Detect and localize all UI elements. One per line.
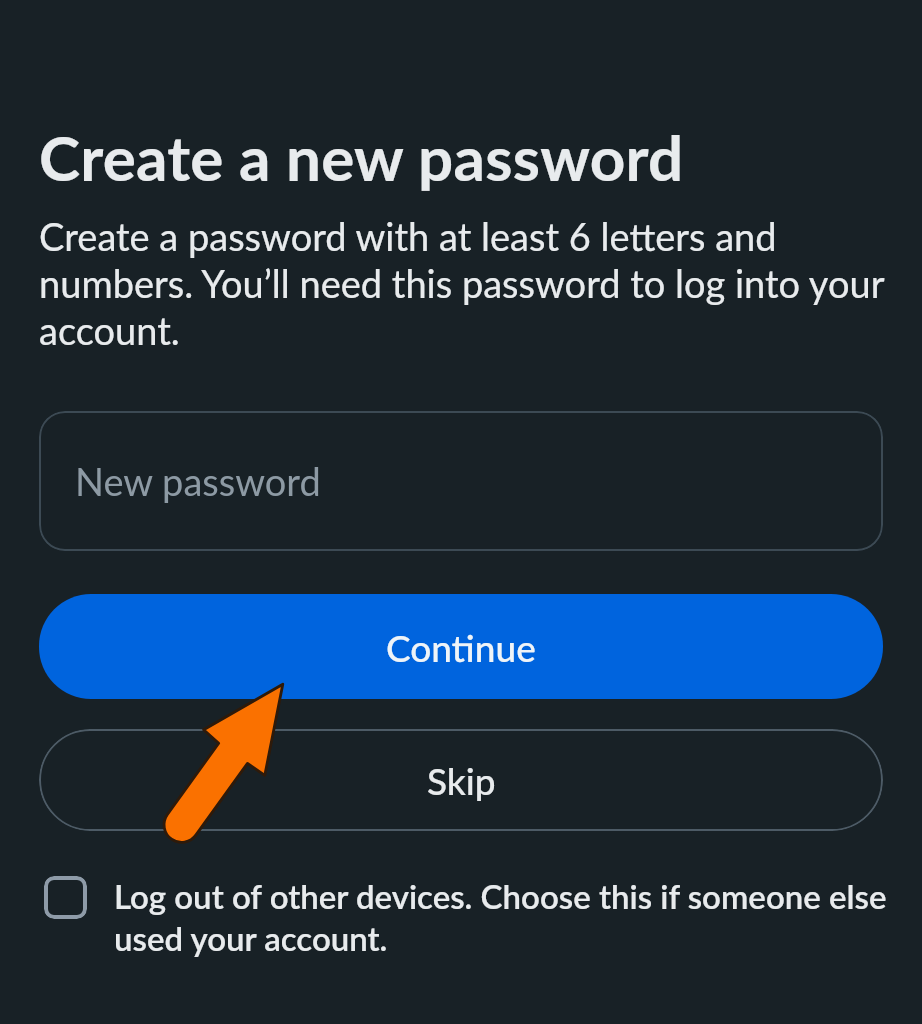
button[interactable]: Log out of other devices [44, 876, 87, 919]
button[interactable]: New password input field [39, 411, 883, 551]
button[interactable]: Log out of other devices [44, 876, 898, 958]
staticText: Skip [427, 758, 496, 802]
button[interactable]: Skip [39, 729, 883, 831]
staticText: Continue [386, 625, 536, 669]
button[interactable]: Continue [39, 594, 883, 699]
staticText: Create a password with at least 6 letter… [39, 213, 894, 353]
staticText: Create a new password [39, 120, 684, 194]
staticText: Log out of other devices. Choose this if… [114, 876, 898, 958]
staticText: New password [75, 458, 321, 504]
